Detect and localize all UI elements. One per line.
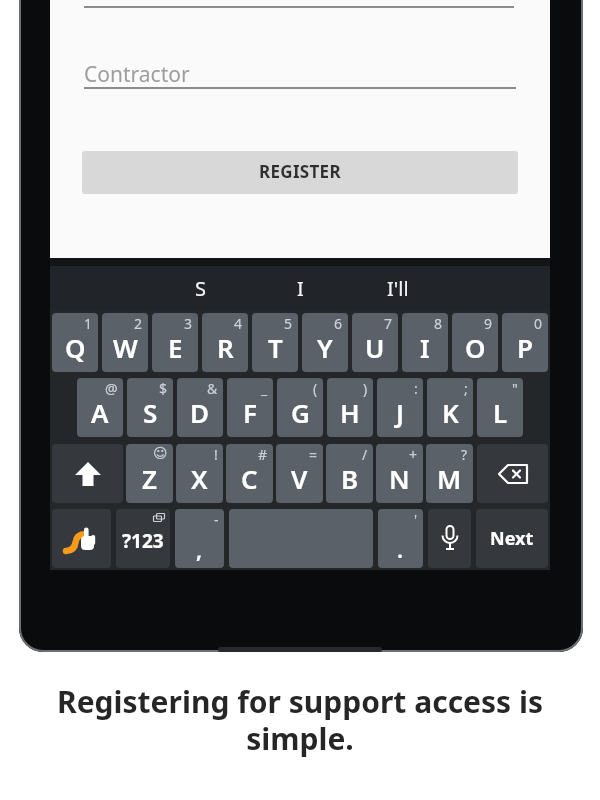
staticText: / bbox=[362, 445, 368, 464]
button[interactable] bbox=[428, 509, 471, 568]
staticText: E bbox=[168, 330, 183, 365]
button[interactable]: N bbox=[376, 444, 423, 503]
button[interactable]: V bbox=[276, 444, 323, 503]
staticText: - bbox=[214, 510, 219, 529]
staticText: L bbox=[493, 395, 508, 430]
staticText: ?123 bbox=[122, 528, 164, 554]
staticText: . bbox=[397, 534, 404, 564]
staticText: 7 bbox=[384, 314, 393, 333]
button[interactable]: D bbox=[177, 378, 223, 437]
staticText: 1 bbox=[84, 314, 93, 333]
staticText: ; bbox=[464, 379, 468, 398]
staticText: D bbox=[190, 395, 210, 430]
staticText: W bbox=[113, 330, 138, 365]
staticText: $ bbox=[159, 379, 168, 398]
staticText: F bbox=[243, 395, 257, 430]
button[interactable]: G bbox=[277, 378, 323, 437]
staticText: 2 bbox=[134, 314, 143, 333]
button[interactable]: Y bbox=[302, 313, 348, 372]
staticText: U bbox=[365, 330, 385, 365]
button[interactable]: O bbox=[452, 313, 498, 372]
staticText: # bbox=[258, 445, 268, 464]
button[interactable]: U bbox=[352, 313, 398, 372]
staticText: ' bbox=[414, 510, 418, 529]
button[interactable]: REGISTER bbox=[82, 151, 518, 194]
button[interactable]: ?123 bbox=[116, 509, 170, 568]
staticText: Q bbox=[65, 330, 86, 365]
staticText: Registering for support access is simple… bbox=[57, 681, 543, 759]
button[interactable] bbox=[52, 509, 111, 568]
staticText: A bbox=[91, 395, 109, 430]
button[interactable]: I'll bbox=[358, 275, 438, 301]
button[interactable]: F bbox=[227, 378, 273, 437]
button[interactable]: R bbox=[202, 313, 248, 372]
staticText: 8 bbox=[434, 314, 443, 333]
staticText: I'll bbox=[387, 275, 409, 301]
staticText: R bbox=[217, 330, 234, 365]
button[interactable]: H bbox=[327, 378, 373, 437]
staticText: 0 bbox=[534, 314, 543, 333]
staticText: B bbox=[341, 461, 359, 496]
staticText: 3 bbox=[184, 314, 193, 333]
button[interactable]: I bbox=[260, 275, 340, 301]
button[interactable]: S bbox=[160, 275, 240, 301]
button[interactable]: S bbox=[127, 378, 173, 437]
staticText: K bbox=[442, 395, 459, 430]
staticText: , bbox=[196, 534, 203, 564]
staticText: S bbox=[195, 275, 206, 301]
button[interactable]: , bbox=[175, 509, 224, 568]
staticText: @ bbox=[105, 379, 118, 398]
button[interactable]: W bbox=[102, 313, 148, 372]
staticText: ☺ bbox=[153, 445, 168, 461]
staticText: REGISTER bbox=[259, 160, 341, 183]
staticText: I bbox=[297, 275, 304, 301]
staticText: 6 bbox=[334, 314, 343, 333]
staticText: M bbox=[437, 461, 462, 496]
staticText: ) bbox=[363, 379, 368, 398]
staticText: = bbox=[309, 445, 318, 464]
button[interactable] bbox=[477, 444, 548, 503]
button[interactable]: Q bbox=[52, 313, 98, 372]
staticText: " bbox=[512, 379, 518, 398]
button[interactable]: L bbox=[477, 378, 523, 437]
button[interactable]: I bbox=[402, 313, 448, 372]
button[interactable]: T bbox=[252, 313, 298, 372]
staticText: V bbox=[291, 461, 308, 496]
staticText: Contractor bbox=[84, 60, 190, 89]
staticText: J bbox=[396, 395, 405, 430]
staticText: X bbox=[191, 461, 208, 496]
button[interactable]: X bbox=[176, 444, 223, 503]
staticText: 4 bbox=[234, 314, 243, 333]
staticText: N bbox=[389, 461, 410, 496]
staticText: ? bbox=[461, 445, 468, 464]
button[interactable]: Z bbox=[126, 444, 173, 503]
staticText: 5 bbox=[284, 314, 293, 333]
button[interactable]: P bbox=[502, 313, 548, 372]
staticText: : bbox=[414, 379, 418, 398]
button[interactable]: Contractor bbox=[84, 55, 516, 91]
staticText: P bbox=[517, 330, 533, 365]
button[interactable] bbox=[52, 444, 123, 503]
staticText: Z bbox=[142, 461, 157, 496]
staticText: G bbox=[291, 395, 310, 430]
button[interactable]: B bbox=[326, 444, 373, 503]
staticText: ( bbox=[313, 379, 318, 398]
staticText: & bbox=[207, 379, 218, 398]
staticText: O bbox=[465, 330, 486, 365]
button[interactable]: M bbox=[426, 444, 473, 503]
staticText: T bbox=[268, 330, 283, 365]
staticText: ! bbox=[214, 445, 218, 464]
button[interactable]: J bbox=[377, 378, 423, 437]
staticText: 9 bbox=[484, 314, 493, 333]
staticText: Next bbox=[490, 526, 534, 551]
button[interactable]: A bbox=[77, 378, 123, 437]
staticText: I bbox=[420, 330, 430, 365]
staticText: Y bbox=[317, 330, 333, 365]
button[interactable]: Next bbox=[476, 509, 548, 568]
staticText: S bbox=[143, 395, 158, 430]
button[interactable]: . bbox=[378, 509, 423, 568]
button[interactable]: C bbox=[226, 444, 273, 503]
button[interactable]: K bbox=[427, 378, 473, 437]
button[interactable]: E bbox=[152, 313, 198, 372]
